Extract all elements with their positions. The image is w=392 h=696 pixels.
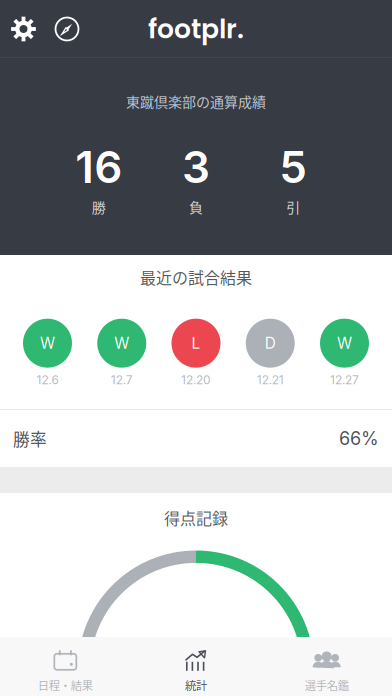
staticText: 勝 <box>92 196 106 217</box>
button[interactable]: 統計 <box>131 640 261 693</box>
button[interactable]: Settings <box>0 0 47 58</box>
staticText: 統計 <box>185 677 207 693</box>
staticText: 勝率 <box>13 426 47 450</box>
staticText: W <box>40 334 55 352</box>
staticText: 負 <box>189 196 203 217</box>
staticText: 12.21 <box>257 373 284 387</box>
staticText: 66% <box>339 428 379 449</box>
staticText: L <box>191 334 200 352</box>
staticText: 12.20 <box>181 373 211 387</box>
staticText: 選手名鑑 <box>305 677 349 693</box>
button[interactable]: 選手名鑑 <box>261 640 392 693</box>
staticText: 5 <box>279 140 307 193</box>
staticText: 16 <box>75 140 122 193</box>
staticText: 引 <box>286 196 300 217</box>
staticText: footplr. <box>148 10 244 48</box>
staticText: 得点記録 <box>164 506 228 529</box>
staticText: D <box>265 334 276 352</box>
staticText: 12.7 <box>111 373 133 387</box>
staticText: 12.6 <box>36 373 58 387</box>
staticText: W <box>337 334 352 352</box>
button[interactable]: Explore <box>47 0 87 58</box>
staticText: 最近の試合結果 <box>140 265 252 289</box>
staticText: W <box>114 334 129 352</box>
staticText: 日程・結果 <box>38 677 93 693</box>
button[interactable]: 日程・結果 <box>0 640 131 693</box>
staticText: 東蹴倶楽部の通算成績 <box>126 91 266 111</box>
staticText: 3 <box>182 140 210 193</box>
staticText: 12.27 <box>330 373 359 387</box>
